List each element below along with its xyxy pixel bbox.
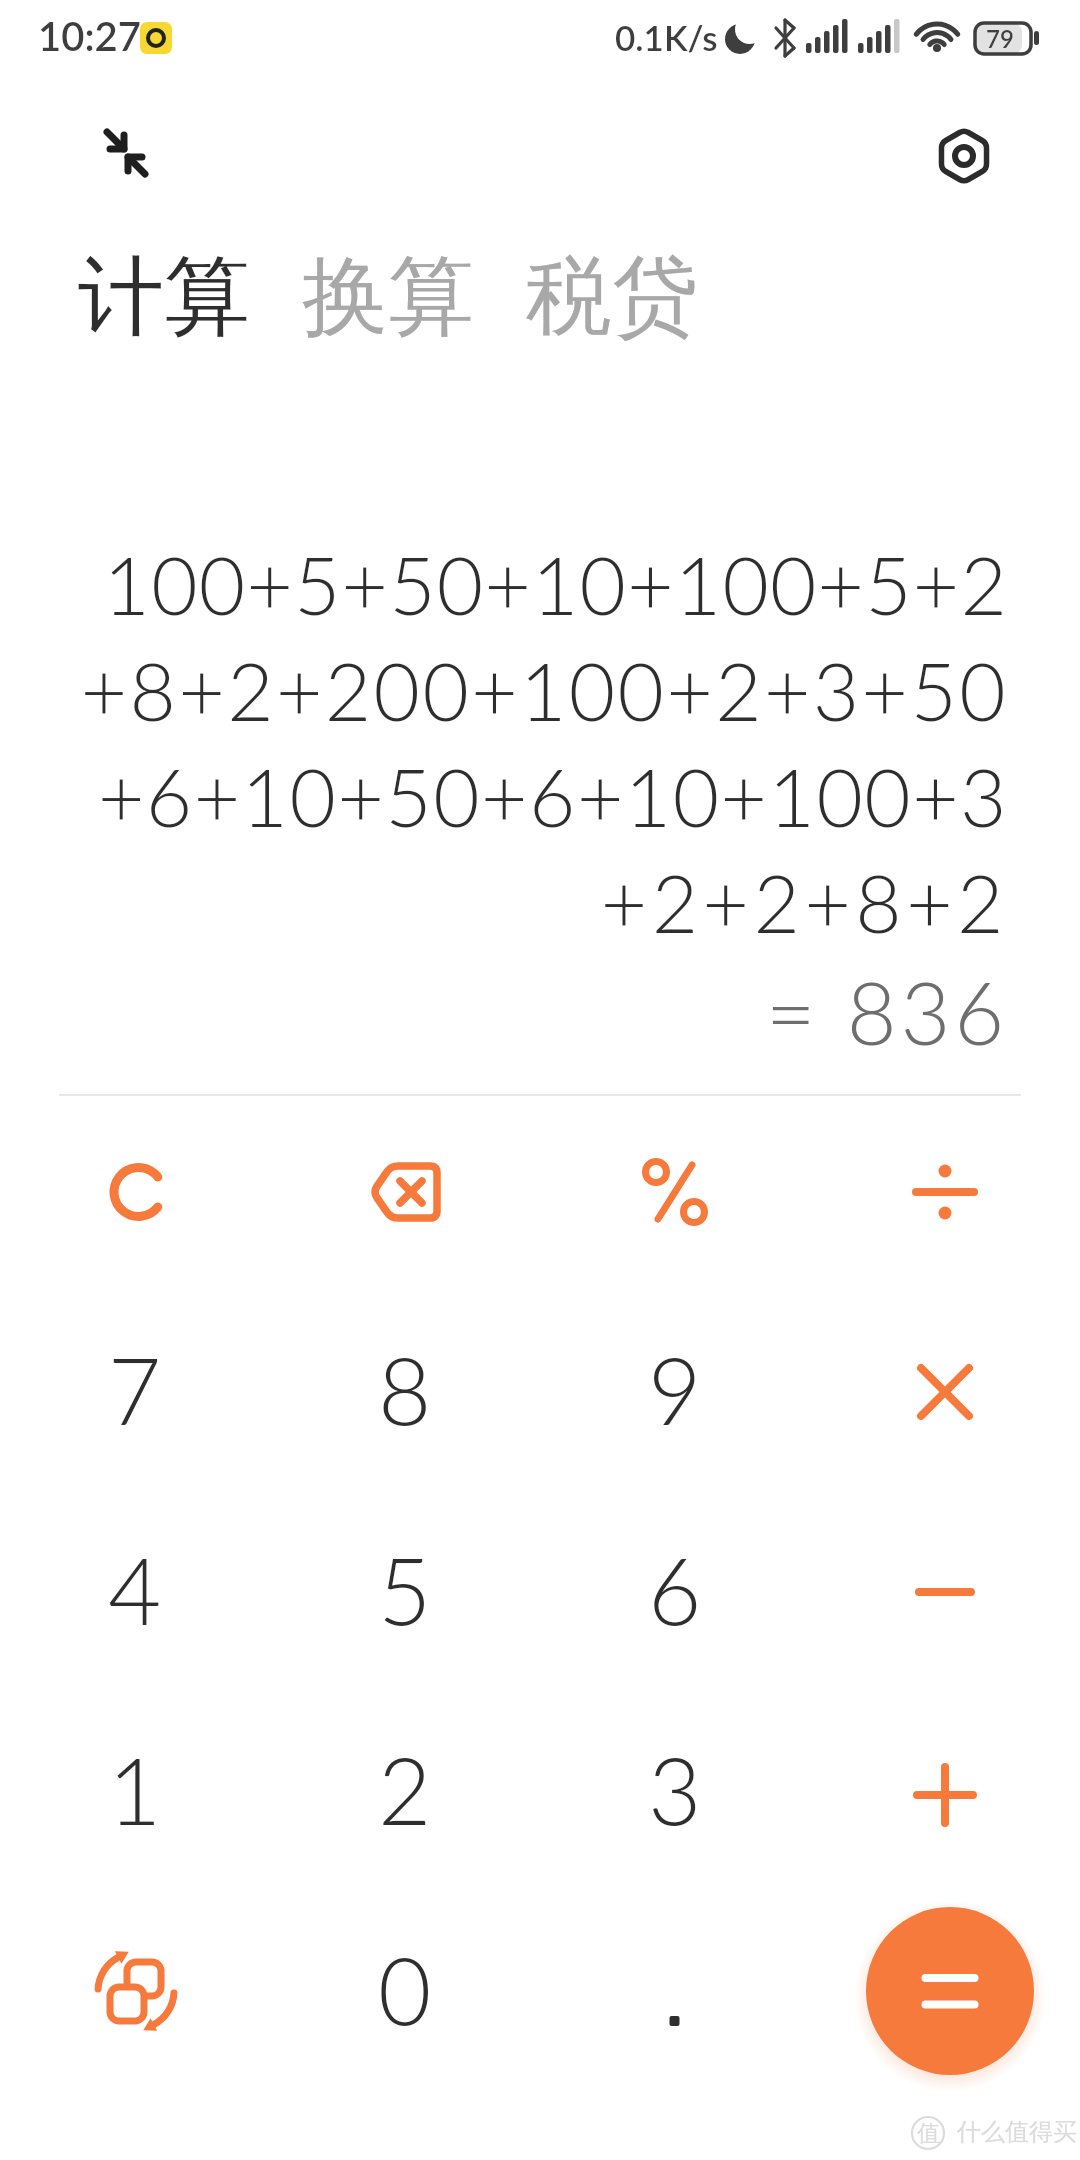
- staticText: 9: [648, 1334, 702, 1444]
- staticText: 5: [378, 1534, 432, 1644]
- staticText: 100+5+50+10+100+5+2: [103, 536, 1008, 632]
- staticText: +6+10+50+6+10+100+3: [97, 748, 1008, 844]
- staticText: 税贷: [526, 243, 698, 351]
- staticText: 79: [986, 24, 1014, 53]
- staticText: 0: [378, 1934, 432, 2044]
- staticText: 8: [378, 1334, 432, 1444]
- button[interactable]: [810, 1092, 1080, 1292]
- staticText: 换算: [302, 243, 474, 351]
- staticText: +2+2+8+2: [600, 854, 1008, 950]
- staticText: 0.1K/s: [615, 16, 718, 58]
- staticText: 10:27: [38, 12, 141, 60]
- button[interactable]: [928, 118, 1002, 192]
- staticText: 3: [648, 1734, 702, 1844]
- button[interactable]: 计算: [78, 243, 250, 351]
- button[interactable]: [866, 1907, 1034, 2075]
- button[interactable]: [540, 1092, 810, 1292]
- button[interactable]: 6: [540, 1492, 810, 1692]
- button[interactable]: 9: [540, 1292, 810, 1492]
- button[interactable]: 3: [540, 1692, 810, 1892]
- button[interactable]: [810, 1692, 1080, 1892]
- button[interactable]: [270, 1092, 540, 1292]
- button[interactable]: 4: [0, 1492, 270, 1692]
- staticText: 4: [108, 1534, 162, 1644]
- button[interactable]: 1: [0, 1692, 270, 1892]
- button[interactable]: [0, 1092, 270, 1292]
- button[interactable]: 2: [270, 1692, 540, 1892]
- button[interactable]: 8: [270, 1292, 540, 1492]
- button[interactable]: 7: [0, 1292, 270, 1492]
- staticText: 什么值得买: [957, 2117, 1077, 2147]
- button[interactable]: [810, 1292, 1080, 1492]
- button[interactable]: 税贷: [526, 243, 698, 351]
- staticText: 1: [108, 1734, 162, 1844]
- button[interactable]: 换算: [302, 243, 474, 351]
- button[interactable]: 5: [270, 1492, 540, 1692]
- staticText: 7: [108, 1334, 162, 1444]
- staticText: 计算: [78, 243, 250, 351]
- staticText: = 836: [765, 960, 1008, 1063]
- staticText: +8+2+200+100+2+3+50: [80, 642, 1008, 738]
- staticText: 6: [648, 1534, 702, 1644]
- staticText: 2: [378, 1734, 432, 1844]
- button[interactable]: [0, 1892, 270, 2092]
- button[interactable]: [88, 118, 162, 192]
- button[interactable]: [540, 1892, 810, 2092]
- button[interactable]: [810, 1492, 1080, 1692]
- staticText: 值: [917, 2119, 940, 2148]
- button[interactable]: 0: [270, 1892, 540, 2092]
